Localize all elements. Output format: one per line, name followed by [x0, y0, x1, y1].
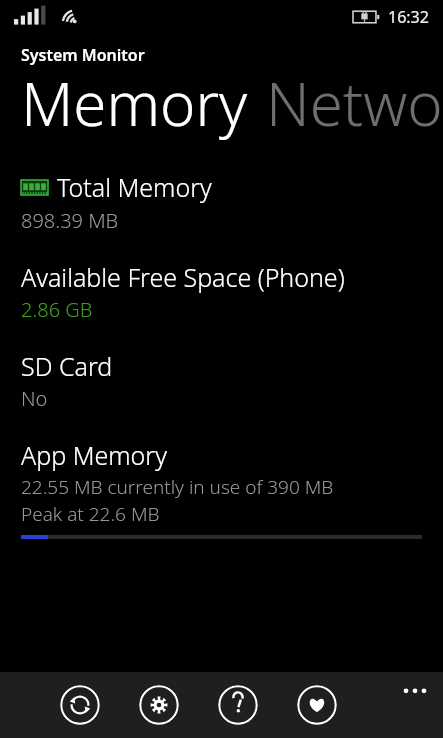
staticText: 898.39 MB: [21, 207, 119, 234]
button[interactable]: Help: [218, 685, 258, 725]
button[interactable]: Settings: [139, 685, 179, 725]
button[interactable]: Total Memory: [0, 170, 443, 234]
staticText: No: [21, 385, 48, 412]
button[interactable]: Memory: [21, 62, 248, 144]
button[interactable]: SD Card: [0, 349, 443, 412]
button[interactable]: Available Free Space (Phone): [0, 260, 443, 323]
staticText: App Memory: [21, 438, 167, 472]
button[interactable]: Favorite: [297, 685, 337, 725]
button[interactable]: More options: [397, 680, 433, 704]
button[interactable]: Network: [266, 62, 443, 144]
staticText: Network: [266, 62, 443, 144]
staticText: Memory: [21, 62, 248, 144]
staticText: 2.86 GB: [21, 296, 93, 323]
button[interactable]: Refresh: [60, 685, 100, 725]
staticText: Available Free Space (Phone): [21, 260, 345, 294]
staticText: Total Memory: [57, 170, 212, 204]
staticText: 22.55 MB currently in use of 390 MB: [21, 474, 334, 500]
button[interactable]: App Memory: [0, 438, 443, 539]
staticText: System Monitor: [21, 44, 145, 66]
staticText: 16:32: [388, 6, 429, 28]
staticText: SD Card: [21, 349, 113, 383]
staticText: Peak at 22.6 MB: [21, 501, 160, 527]
